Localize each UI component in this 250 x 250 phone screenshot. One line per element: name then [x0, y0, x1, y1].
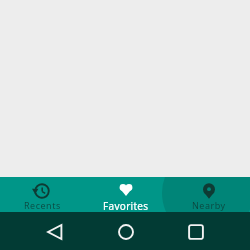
- staticText: Favorites: [103, 199, 149, 212]
- button[interactable]: Nearby: [167, 177, 250, 212]
- button[interactable]: [161, 213, 231, 250]
- button[interactable]: Recents: [0, 177, 84, 212]
- button[interactable]: [21, 213, 91, 250]
- button[interactable]: [91, 213, 161, 250]
- staticText: Recents: [24, 199, 61, 211]
- button[interactable]: Favorites: [84, 177, 167, 212]
- staticText: Nearby: [192, 199, 226, 211]
